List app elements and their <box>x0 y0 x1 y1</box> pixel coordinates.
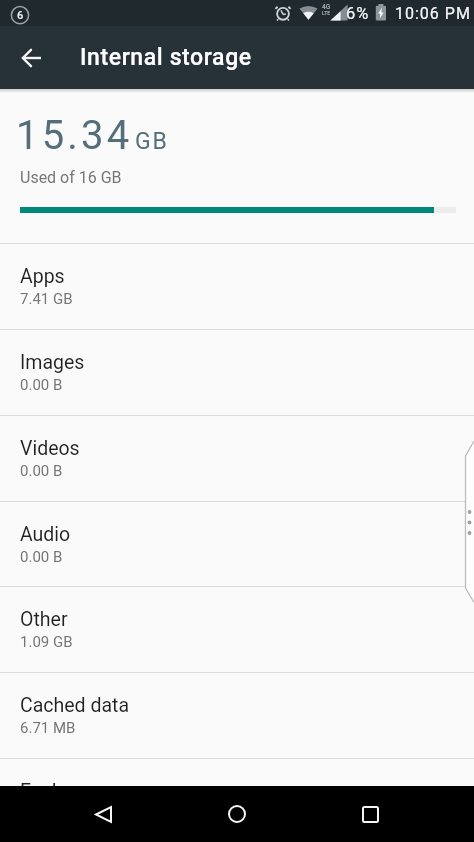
staticText: GB <box>135 128 169 155</box>
button[interactable]: Images <box>0 329 474 415</box>
staticText: Audio <box>20 523 71 546</box>
staticText: 4G <box>322 3 331 11</box>
staticText: 6% <box>346 4 370 23</box>
button[interactable]: Cached data <box>0 672 474 758</box>
button[interactable] <box>201 786 273 842</box>
staticText: 7.41 GB <box>20 290 73 308</box>
button[interactable] <box>67 786 139 842</box>
staticText: 15.34 <box>16 112 133 159</box>
button[interactable]: Audio <box>0 501 474 586</box>
staticText: 0.00 B <box>20 462 63 480</box>
staticText: Used of 16 GB <box>20 168 122 187</box>
staticText: 0.00 B <box>20 548 63 566</box>
staticText: Images <box>20 351 85 374</box>
staticText: Videos <box>20 437 80 460</box>
staticText: 6.71 MB <box>20 719 76 737</box>
staticText: Explore <box>20 780 85 803</box>
staticText: 0.00 B <box>20 376 63 394</box>
button[interactable] <box>334 786 406 842</box>
staticText: Other <box>20 608 68 631</box>
staticText: Cached data <box>20 694 130 717</box>
staticText: 10:06 PM <box>395 4 471 23</box>
staticText: 6 <box>17 9 24 22</box>
staticText: LTE <box>322 10 331 16</box>
button[interactable]: Other <box>0 586 474 672</box>
button[interactable]: Apps <box>0 243 474 329</box>
button[interactable]: Videos <box>0 415 474 501</box>
staticText: Apps <box>20 265 65 288</box>
staticText: 1.09 GB <box>20 633 73 651</box>
button[interactable] <box>8 36 56 80</box>
staticText: Internal storage <box>80 44 252 71</box>
